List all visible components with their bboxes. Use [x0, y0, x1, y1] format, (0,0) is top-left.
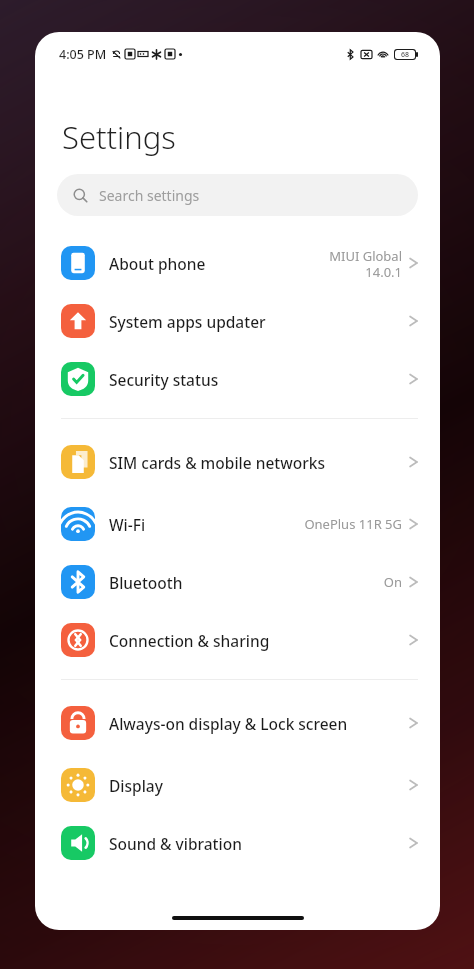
button[interactable]: About phone	[35, 234, 440, 292]
button[interactable]: Security status	[35, 350, 440, 408]
staticText: MIUI Global 14.0.1	[329, 247, 402, 280]
staticText: On	[383, 573, 402, 591]
other: Always-on display and Lock screen	[61, 706, 95, 740]
other: System apps updater	[61, 304, 95, 338]
staticText: 68	[401, 50, 410, 59]
staticText: Bluetooth	[109, 572, 375, 593]
staticText: Sound & vibration	[109, 833, 401, 854]
staticText: About phone	[109, 253, 321, 274]
button[interactable]: System apps updater	[35, 292, 440, 350]
button[interactable]: Connection and sharing	[35, 611, 440, 669]
button[interactable]: Always-on display and Lock screen	[35, 690, 440, 756]
other: Wi-Fi	[61, 507, 95, 541]
staticText: Always-on display & Lock screen	[109, 713, 401, 734]
other: Security status	[61, 362, 95, 396]
other: About phone	[61, 246, 95, 280]
button[interactable]: Wi-Fi	[35, 495, 440, 553]
staticText: Security status	[109, 369, 401, 390]
other: SIM cards and mobile networks	[61, 445, 95, 479]
button[interactable]: Display	[35, 756, 440, 814]
button[interactable]: SIM cards and mobile networks	[35, 429, 440, 495]
staticText: Connection & sharing	[109, 630, 401, 651]
button[interactable]: Search settings	[57, 174, 418, 216]
staticText: Display	[109, 775, 401, 796]
other: Sound and vibration	[61, 826, 95, 860]
other: Connection and sharing	[61, 623, 95, 657]
staticText: Settings	[62, 116, 176, 158]
other: Display	[61, 768, 95, 802]
staticText: System apps updater	[109, 311, 401, 332]
staticText: OnePlus 11R 5G	[304, 515, 402, 533]
staticText: 4:05 PM	[59, 46, 107, 63]
button[interactable]: Bluetooth	[35, 553, 440, 611]
other: Bluetooth	[61, 565, 95, 599]
staticText: SIM cards & mobile networks	[109, 452, 401, 473]
staticText: Wi-Fi	[109, 514, 296, 535]
button[interactable]: Sound and vibration	[35, 814, 440, 872]
staticText: Search settings	[99, 186, 200, 205]
